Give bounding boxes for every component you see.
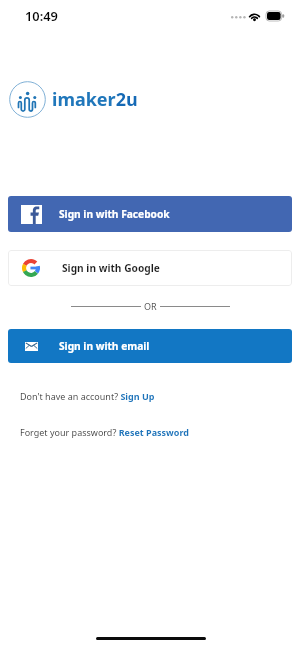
button[interactable]: Sign in with Google (8, 250, 292, 286)
staticText: Don't have an account? Sign Up (20, 390, 155, 402)
staticText: Sign in with email (59, 339, 150, 353)
button[interactable]: Sign in with Facebook (8, 196, 292, 232)
button[interactable]: Sign in with email (8, 329, 292, 363)
staticText: imaker2u (52, 87, 138, 112)
staticText: Sign in with Google (62, 261, 160, 275)
staticText: Forget your password? Reset Password (20, 426, 189, 438)
staticText: OR (144, 300, 157, 312)
staticText: 10:49 (25, 7, 58, 24)
staticText: Sign in with Facebook (59, 207, 170, 221)
button[interactable]: Don't have an account? Sign Up (20, 390, 155, 402)
button[interactable]: Forget your password? Reset Password (20, 426, 189, 438)
